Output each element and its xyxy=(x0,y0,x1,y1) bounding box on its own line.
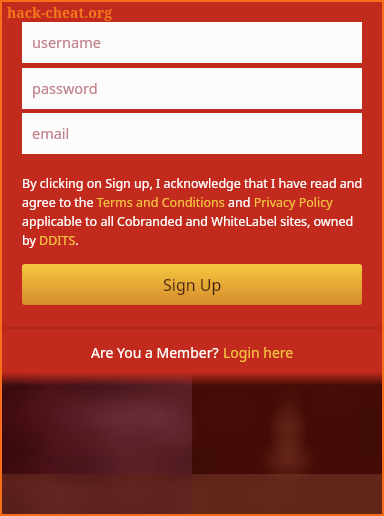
staticText: Login here xyxy=(223,343,294,362)
staticText: By clicking on Sign up, I acknowledge th… xyxy=(22,175,364,248)
button[interactable]: email xyxy=(22,113,362,154)
staticText: email xyxy=(32,123,70,143)
staticText: hack-cheat.org xyxy=(7,3,113,22)
button[interactable]: password xyxy=(22,68,362,109)
button[interactable]: Sign Up xyxy=(22,264,362,305)
button[interactable]: Login here xyxy=(223,343,294,362)
staticText: password xyxy=(32,78,98,98)
button[interactable]: username xyxy=(22,22,362,63)
staticText: Are You a Member? xyxy=(91,343,223,362)
staticText: username xyxy=(32,32,101,52)
staticText: Sign Up xyxy=(163,274,222,296)
